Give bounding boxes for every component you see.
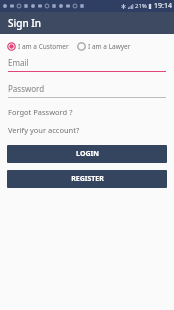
staticText: REGISTER: [71, 174, 104, 184]
button[interactable]: REGISTER: [7, 170, 167, 188]
staticText: Sign In: [8, 16, 42, 30]
staticText: 21%: [135, 2, 147, 10]
button[interactable]: LOGIN: [7, 145, 167, 163]
staticText: Email: [8, 57, 29, 68]
button[interactable]: Forgot Password ?: [0, 107, 174, 117]
button[interactable]: Password: [0, 83, 174, 98]
button[interactable]: Verify your account?: [0, 125, 174, 135]
staticText: I am a Customer: [18, 42, 69, 51]
staticText: Forgot Password ?: [8, 107, 73, 117]
button[interactable]: I am a Customer: [6, 41, 70, 52]
staticText: I am a Lawyer: [88, 42, 131, 51]
staticText: LOGIN: [76, 149, 99, 159]
staticText: 19:14: [154, 1, 172, 11]
button[interactable]: I am a Lawyer: [76, 41, 132, 52]
staticText: Verify your account?: [8, 125, 80, 135]
staticText: Password: [8, 83, 45, 94]
button[interactable]: Email: [0, 57, 174, 72]
